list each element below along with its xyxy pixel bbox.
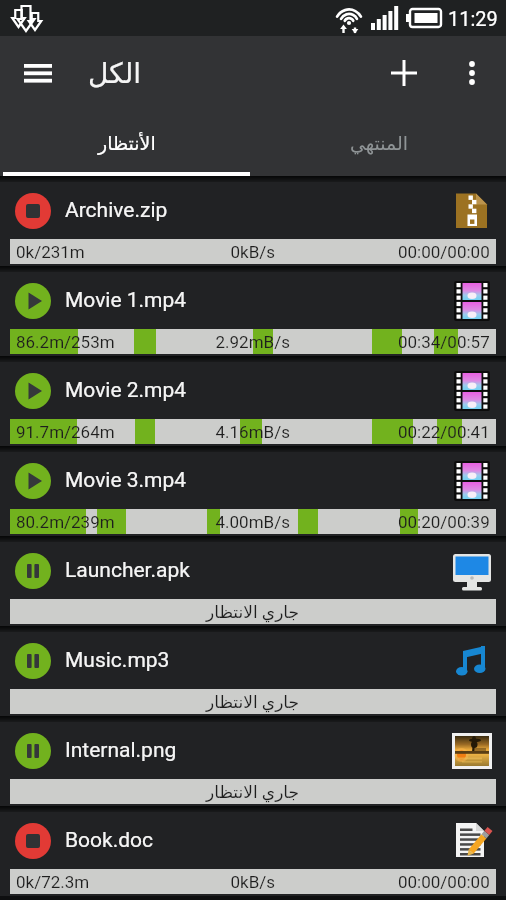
staticText: 11:29 <box>448 7 498 30</box>
staticText: Book.doc <box>65 828 154 853</box>
button[interactable]: Movie 1.mp4 <box>0 272 506 356</box>
button[interactable]: الأنتظار <box>0 110 253 176</box>
staticText: Movie 1.mp4 <box>65 288 187 313</box>
staticText: Launcher.apk <box>65 558 190 583</box>
staticText: Internal.png <box>65 738 177 763</box>
button[interactable]: Movie 2.mp4 <box>0 362 506 446</box>
staticText: Movie 3.mp4 <box>65 468 187 493</box>
button[interactable]: Movie 3.mp4 <box>0 452 506 536</box>
button[interactable] <box>380 49 428 97</box>
staticText: الكل <box>88 57 141 90</box>
staticText: Movie 2.mp4 <box>65 378 187 403</box>
button[interactable] <box>14 49 62 97</box>
button[interactable]: Launcher.apk <box>0 542 506 626</box>
button[interactable]: Music.mp3 <box>0 632 506 716</box>
staticText: Archive.zip <box>65 198 168 223</box>
staticText: Music.mp3 <box>65 648 170 673</box>
button[interactable]: Internal.png <box>0 722 506 806</box>
button[interactable]: Book.doc <box>0 812 506 896</box>
staticText: الأنتظار <box>98 132 156 154</box>
button[interactable] <box>452 49 492 97</box>
staticText: المنتهي <box>350 132 409 154</box>
button[interactable]: المنتهي <box>253 110 506 176</box>
button[interactable]: Archive.zip <box>0 182 506 266</box>
